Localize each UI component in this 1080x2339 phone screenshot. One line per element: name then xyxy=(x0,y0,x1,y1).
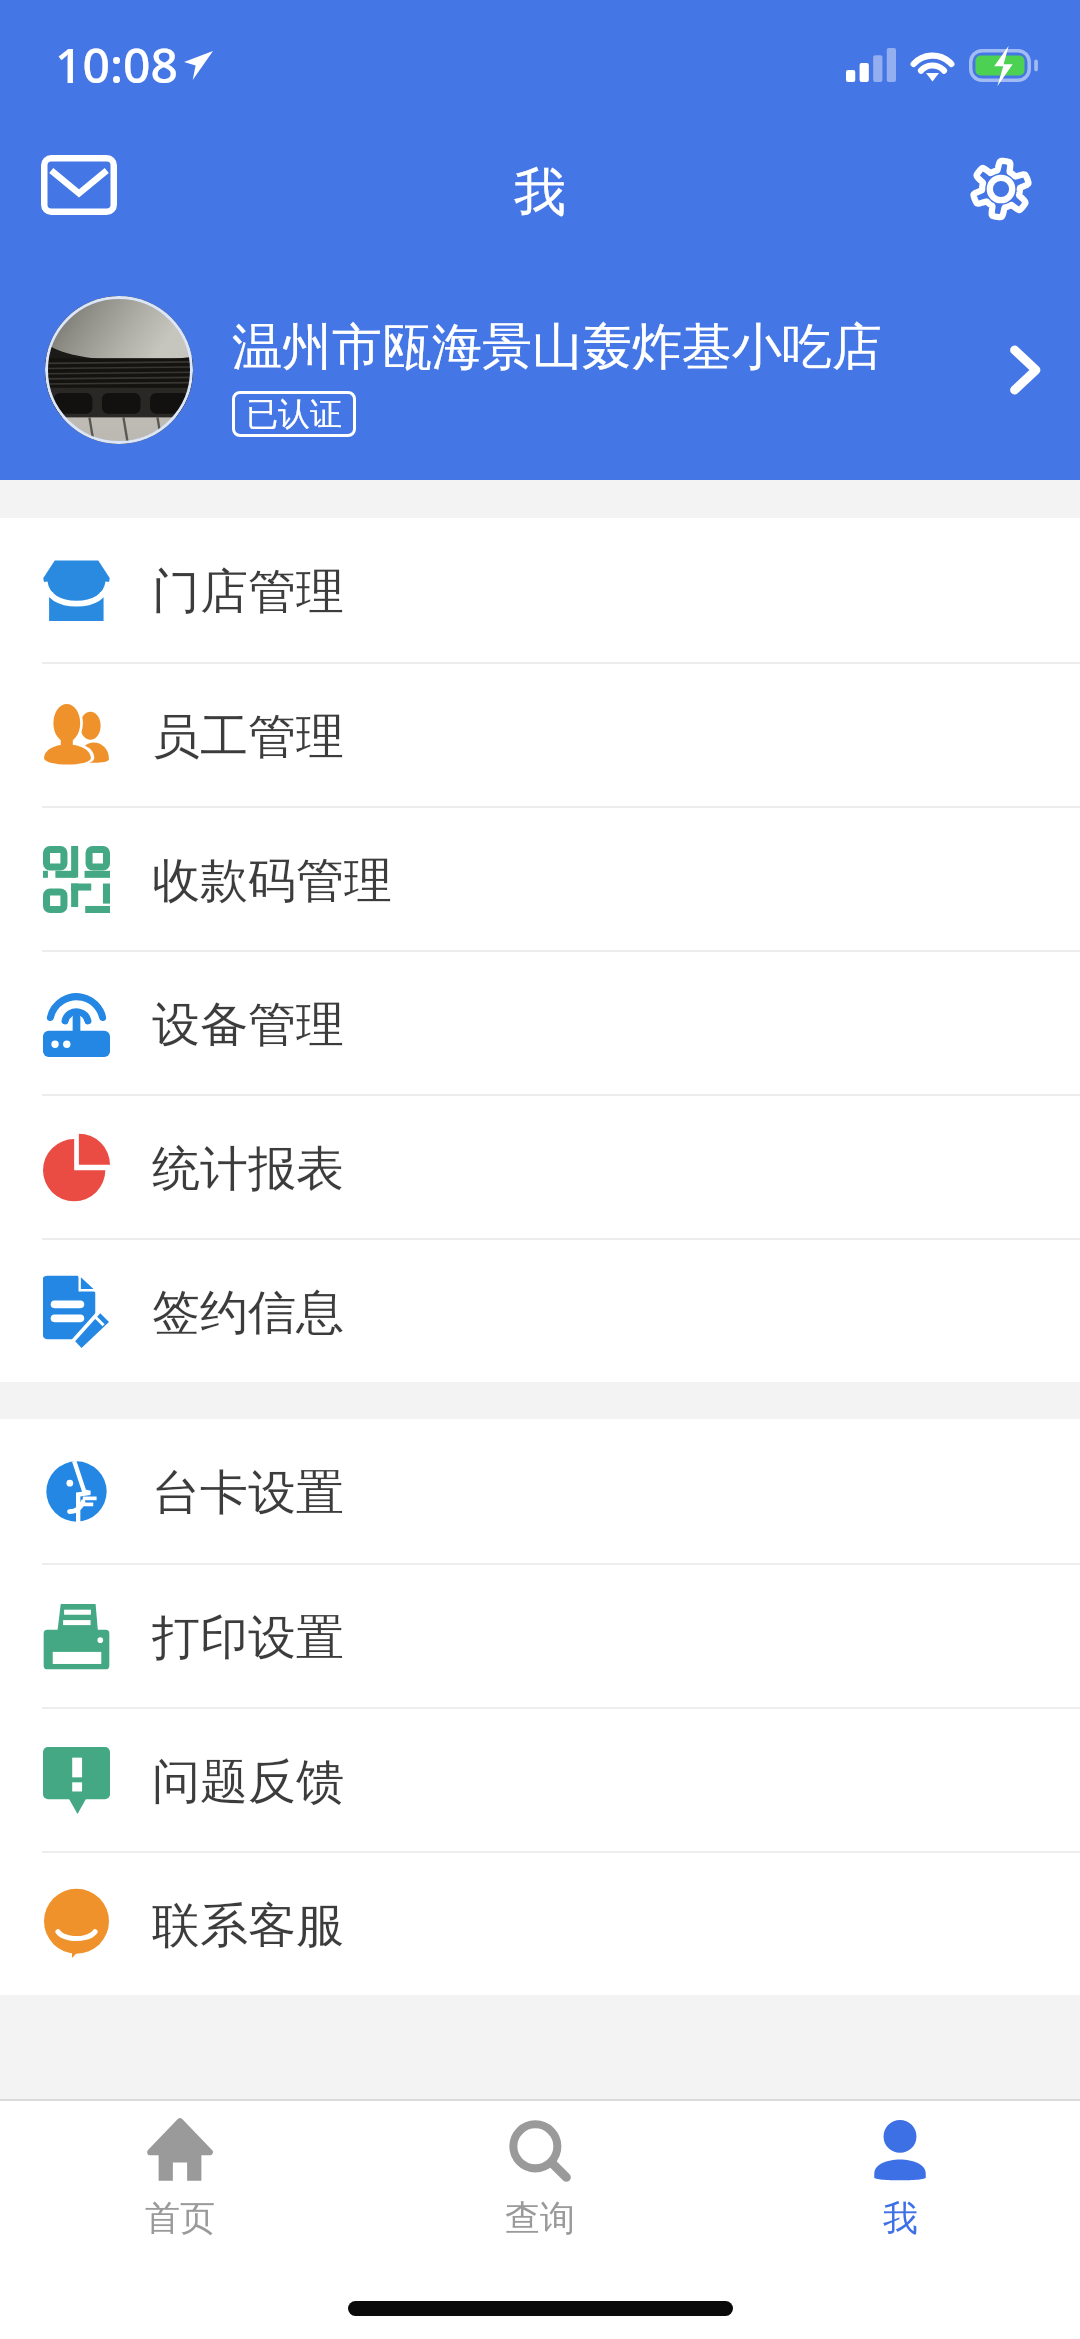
staticText: 10:08 xyxy=(55,32,178,97)
button[interactable]: 我 xyxy=(720,2101,1080,2259)
button[interactable]: 问题反馈 xyxy=(0,1709,1080,1851)
button[interactable]: Settings xyxy=(945,133,1057,245)
staticText: 门店管理 xyxy=(152,562,344,622)
staticText: 已认证 xyxy=(246,394,342,434)
button[interactable]: 首页 xyxy=(0,2101,360,2259)
staticText: 设备管理 xyxy=(152,995,344,1055)
staticText: 员工管理 xyxy=(152,707,344,767)
button[interactable]: Messages xyxy=(23,129,135,241)
staticText: 问题反馈 xyxy=(152,1752,344,1812)
button[interactable]: 统计报表 xyxy=(0,1096,1080,1238)
staticText: 温州市瓯海景山轰炸基小吃店 xyxy=(232,316,882,379)
button[interactable]: 查询 xyxy=(360,2101,720,2259)
staticText: 我 xyxy=(514,160,566,226)
staticText: 统计报表 xyxy=(152,1139,344,1199)
staticText: 我 xyxy=(883,2196,918,2240)
staticText: 台卡设置 xyxy=(152,1463,344,1523)
button[interactable]: 打印设置 xyxy=(0,1565,1080,1707)
staticText: 联系客服 xyxy=(152,1896,344,1956)
button[interactable]: 温州市瓯海景山轰炸基小吃店 xyxy=(0,280,1080,460)
staticText: 首页 xyxy=(145,2196,215,2240)
button[interactable]: 收款码管理 xyxy=(0,808,1080,950)
staticText: 打印设置 xyxy=(152,1608,344,1668)
staticText: 签约信息 xyxy=(152,1283,344,1343)
staticText: 查询 xyxy=(505,2196,575,2240)
button[interactable]: 设备管理 xyxy=(0,952,1080,1094)
button[interactable]: 台卡设置 xyxy=(0,1419,1080,1563)
button[interactable]: 联系客服 xyxy=(0,1853,1080,1995)
button[interactable]: 门店管理 xyxy=(0,518,1080,662)
button[interactable]: 签约信息 xyxy=(0,1240,1080,1382)
button[interactable]: 员工管理 xyxy=(0,664,1080,806)
staticText: 收款码管理 xyxy=(152,851,392,911)
